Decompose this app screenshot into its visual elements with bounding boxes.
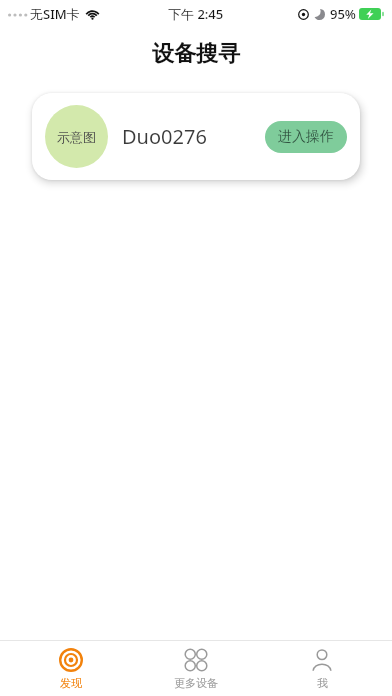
staticText: 示意图 (57, 129, 96, 145)
staticText: Duo0276 (122, 123, 207, 150)
staticText: 下午 2:45 (168, 5, 224, 23)
other: 更多设备 (184, 648, 208, 672)
staticText: 无SIM卡 (30, 5, 80, 23)
staticText: 设备搜寻 (152, 40, 240, 68)
staticText: 进入操作 (278, 128, 334, 146)
staticText: 更多设备 (174, 676, 218, 690)
button[interactable]: 更多设备 (141, 642, 251, 696)
staticText: 95% (330, 5, 356, 23)
staticText: 发现 (60, 676, 82, 690)
button[interactable]: 发现 (16, 642, 126, 696)
button[interactable]: 示意图 (32, 93, 360, 180)
button[interactable]: 进入操作 (265, 121, 347, 153)
button[interactable]: 我 (267, 642, 377, 696)
other: 发现 (59, 648, 83, 672)
staticText: 我 (317, 676, 328, 690)
other: 我 (310, 648, 334, 672)
